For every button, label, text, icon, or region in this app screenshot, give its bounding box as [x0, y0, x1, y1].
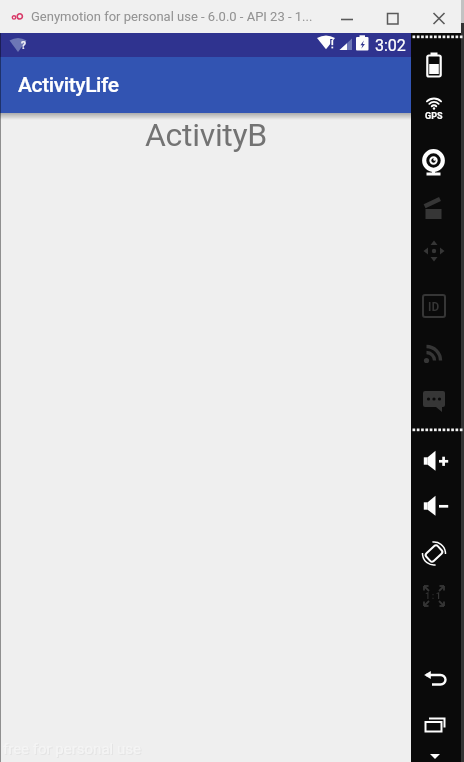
button[interactable]	[421, 148, 447, 178]
button[interactable]	[422, 238, 446, 264]
button[interactable]	[335, 6, 359, 28]
staticText: ActivityB	[145, 116, 268, 154]
button[interactable]	[422, 346, 446, 372]
button[interactable]	[422, 51, 446, 79]
staticText: 1:1	[425, 591, 443, 602]
button[interactable]: 1:1	[422, 584, 446, 608]
staticText: free for personal use	[3, 740, 141, 758]
button[interactable]	[422, 196, 446, 222]
button[interactable]	[422, 713, 448, 735]
staticText: free for personal use	[4, 741, 142, 759]
button[interactable]	[421, 450, 449, 474]
button[interactable]: GPS	[420, 96, 448, 122]
button[interactable]	[381, 6, 405, 28]
staticText: ?	[21, 40, 26, 52]
staticText: ActivityLife	[18, 73, 119, 98]
button[interactable]	[421, 495, 449, 519]
button[interactable]	[427, 6, 451, 28]
button[interactable]: ID	[422, 294, 446, 320]
button[interactable]	[422, 388, 446, 414]
button[interactable]: ActivityLife	[0, 57, 411, 113]
staticText: GPS	[425, 111, 443, 122]
button[interactable]	[426, 750, 444, 762]
staticText: 3:02	[375, 36, 406, 55]
button[interactable]	[421, 540, 447, 568]
staticText: Genymotion for personal use - 6.0.0 - AP…	[31, 9, 313, 24]
button[interactable]	[422, 666, 448, 690]
staticText: ID	[428, 300, 440, 314]
